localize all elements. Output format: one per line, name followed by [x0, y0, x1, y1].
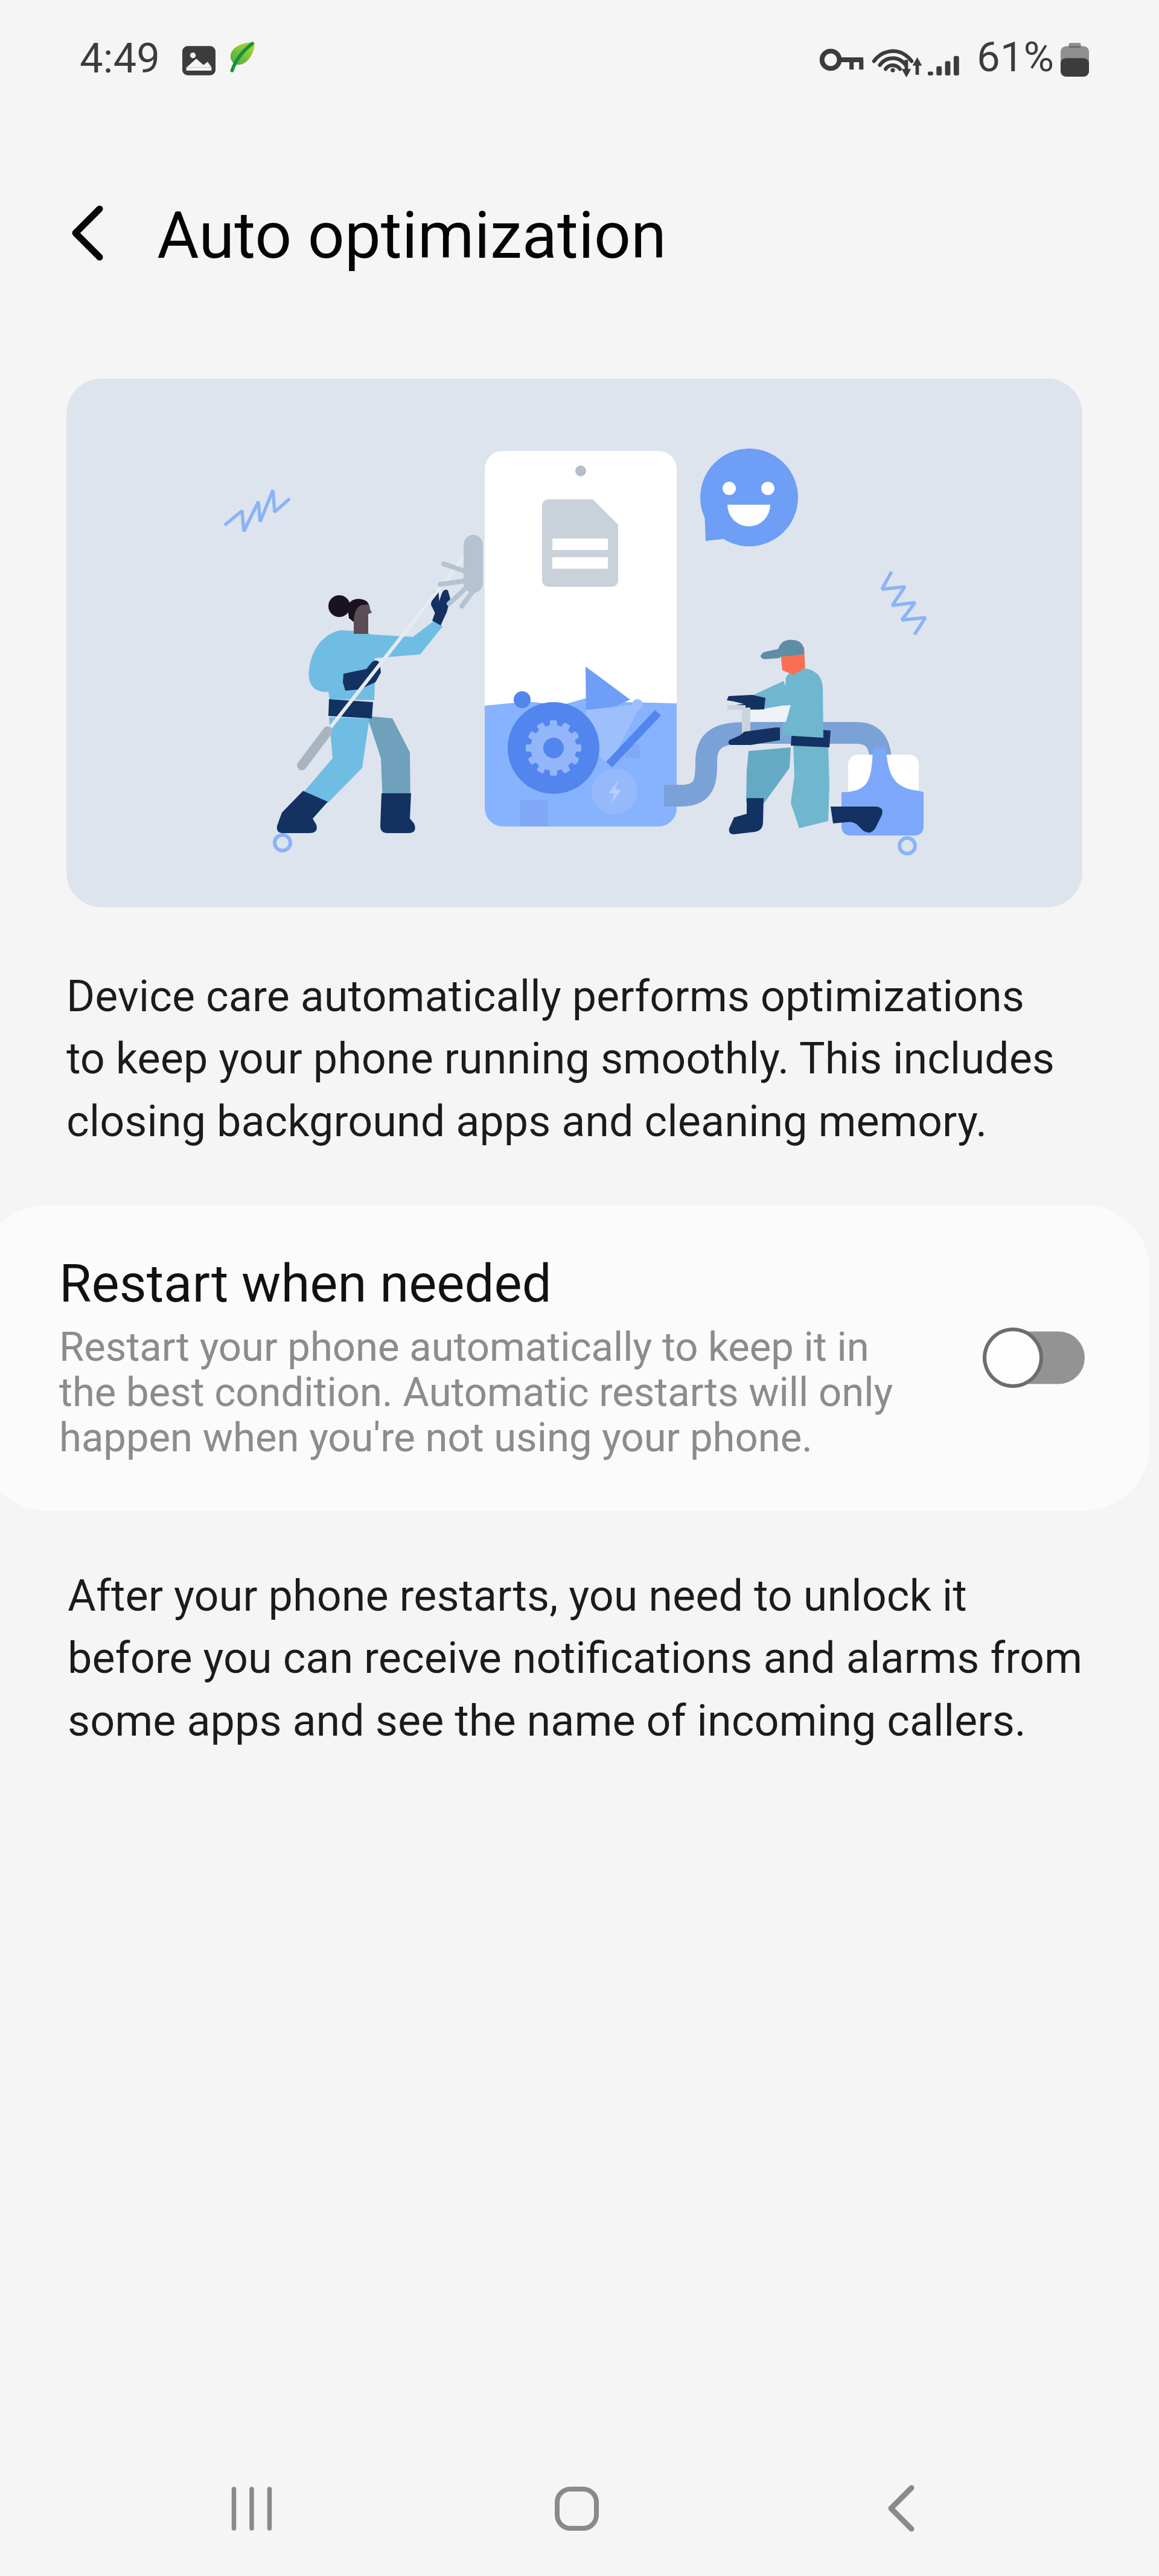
button[interactable]: Navigate up	[36, 182, 139, 284]
staticText: Restart when needed	[59, 1253, 552, 1314]
staticText: 61%	[977, 33, 1055, 81]
staticText: 4:49	[80, 34, 161, 83]
button[interactable]: Restart when needed	[966, 1312, 1111, 1403]
staticText: Device care automatically performs optim…	[66, 971, 1074, 1147]
button[interactable]: Home	[528, 2461, 625, 2557]
staticText: Restart your phone automatically to keep…	[59, 1323, 893, 1462]
button[interactable]: Recents	[203, 2461, 300, 2557]
staticText: After your phone restarts, you need to u…	[68, 1570, 1106, 1747]
button[interactable]: Restart when needed	[0, 1205, 1150, 1510]
button[interactable]: Back	[853, 2461, 950, 2557]
staticText: Auto optimization	[157, 198, 667, 273]
